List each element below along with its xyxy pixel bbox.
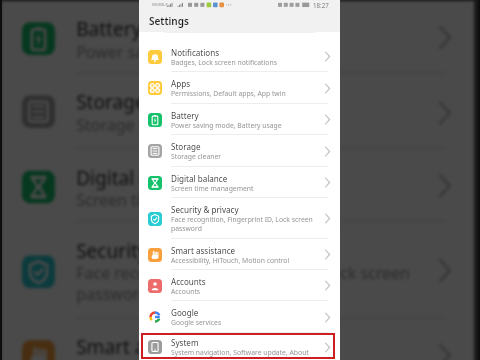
- button[interactable]: Apps: [139, 72, 340, 104]
- staticText: Storage: [171, 141, 201, 152]
- button[interactable]: Digital balance: [139, 167, 340, 198]
- staticText: Settings: [149, 14, 189, 28]
- staticText: Google services: [171, 318, 222, 327]
- button[interactable]: Smart assistance: [1, 319, 474, 360]
- staticText: Storage cleaner: [76, 114, 196, 135]
- staticText: MOBILE: [152, 2, 168, 8]
- button[interactable]: Notifications: [139, 41, 340, 72]
- staticText: Security & privacy: [171, 204, 239, 215]
- staticText: Google: [171, 307, 199, 318]
- staticText: Storage cleaner: [171, 152, 222, 161]
- staticText: Badges, Lock screen notifications: [171, 58, 277, 67]
- staticText: Power saving mode, Battery usage: [171, 121, 282, 130]
- staticText: Face recognition, Fingerprint ID, Lock s…: [171, 215, 313, 233]
- staticText: Digital balance: [76, 163, 210, 189]
- staticText: Storage: [76, 88, 147, 114]
- staticText: Power saving mode, Battery usage: [76, 41, 338, 62]
- staticText: Smart assistance: [76, 333, 229, 359]
- button[interactable]: Storage: [1, 74, 474, 149]
- staticText: Screen time management: [171, 184, 254, 193]
- staticText: Accounts: [171, 287, 201, 296]
- staticText: 18:27: [313, 1, 329, 9]
- button[interactable]: Smart assistance: [139, 239, 340, 270]
- button[interactable]: Battery: [139, 104, 340, 135]
- staticText: Face recognition, Fingerprint ID, Lock s…: [76, 262, 411, 305]
- staticText: Accessibility, HiTouch, Motion control: [171, 256, 290, 265]
- button[interactable]: Google: [139, 301, 340, 333]
- button[interactable]: Security & privacy: [1, 222, 474, 319]
- staticText: Security & privacy: [76, 236, 236, 262]
- button[interactable]: Battery: [1, 1, 474, 74]
- button[interactable]: Accounts: [139, 270, 340, 301]
- staticText: Permissions, Default apps, App twin: [171, 89, 286, 98]
- staticText: Apps: [171, 78, 191, 89]
- button[interactable]: Digital balance: [1, 149, 474, 222]
- staticText: System navigation, Software update, Abou…: [171, 348, 309, 357]
- button[interactable]: Storage: [139, 135, 340, 167]
- button[interactable]: Security & privacy: [139, 198, 340, 239]
- staticText: Notifications: [171, 47, 220, 58]
- staticText: Accessibility, HiTouch, Motion control: [76, 359, 356, 360]
- button[interactable]: System: [139, 331, 340, 360]
- staticText: Accounts: [171, 276, 206, 287]
- staticText: Battery: [76, 15, 142, 41]
- staticText: Digital balance: [171, 173, 228, 184]
- staticText: Smart assistance: [171, 245, 236, 256]
- staticText: Battery: [171, 110, 199, 121]
- staticText: System: [171, 337, 199, 348]
- staticText: Screen time management: [76, 189, 272, 211]
